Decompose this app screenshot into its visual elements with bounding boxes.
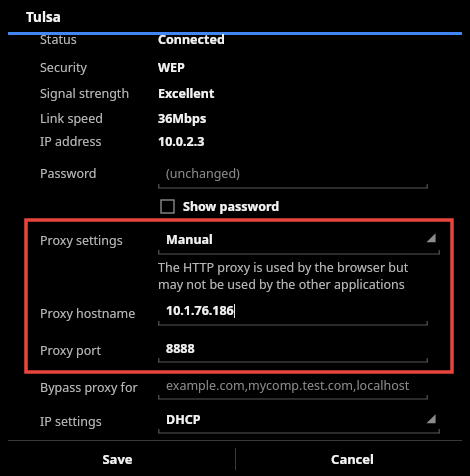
staticText: may not be used by the other application… xyxy=(158,276,405,293)
staticText: Bypass proxy for xyxy=(40,379,138,396)
staticText: example.com,mycomp.test.com,localhost xyxy=(166,377,410,394)
staticText: Connected xyxy=(158,31,225,44)
staticText: Password xyxy=(40,165,97,182)
staticText: Save xyxy=(102,450,133,468)
button[interactable]: Open dropdown xyxy=(425,232,437,244)
button[interactable]: DHCP xyxy=(158,406,440,432)
staticText: 10.0.2.3 xyxy=(158,133,205,150)
staticText: IP settings xyxy=(40,413,102,430)
staticText: IP address xyxy=(40,133,102,150)
staticText: Security xyxy=(40,59,87,76)
button[interactable]: Save xyxy=(0,441,235,476)
button[interactable]: Show password xyxy=(161,198,280,215)
staticText: (unchanged) xyxy=(166,165,240,182)
button[interactable]: (unchanged) xyxy=(158,158,428,186)
staticText: Tulsa xyxy=(26,8,61,26)
staticText: 10.1.76.186 xyxy=(166,302,234,319)
button[interactable]: example.com,mycomp.test.com,localhost xyxy=(158,372,428,398)
staticText: Link speed xyxy=(40,110,103,127)
staticText: 36Mbps xyxy=(158,110,207,127)
staticText: Manual xyxy=(166,231,213,248)
button[interactable]: Cancel xyxy=(235,441,470,476)
staticText: 8888 xyxy=(166,340,195,357)
staticText: Excellent xyxy=(158,85,215,102)
staticText: Proxy hostname xyxy=(40,305,136,322)
button[interactable]: 8888 xyxy=(158,335,428,361)
staticText: The HTTP proxy is used by the browser bu… xyxy=(158,259,409,276)
staticText: Signal strength xyxy=(40,85,130,102)
staticText: Status xyxy=(40,31,77,44)
button[interactable]: 10.1.76.186 xyxy=(158,298,428,324)
button[interactable]: Manual xyxy=(158,226,440,252)
staticText: Proxy port xyxy=(40,342,101,359)
staticText: DHCP xyxy=(166,411,201,428)
staticText: WEP xyxy=(158,59,185,76)
staticText: Proxy settings xyxy=(40,232,123,249)
staticText: Show password xyxy=(183,198,280,215)
staticText: Cancel xyxy=(331,450,374,468)
button[interactable]: Open dropdown xyxy=(425,413,437,425)
